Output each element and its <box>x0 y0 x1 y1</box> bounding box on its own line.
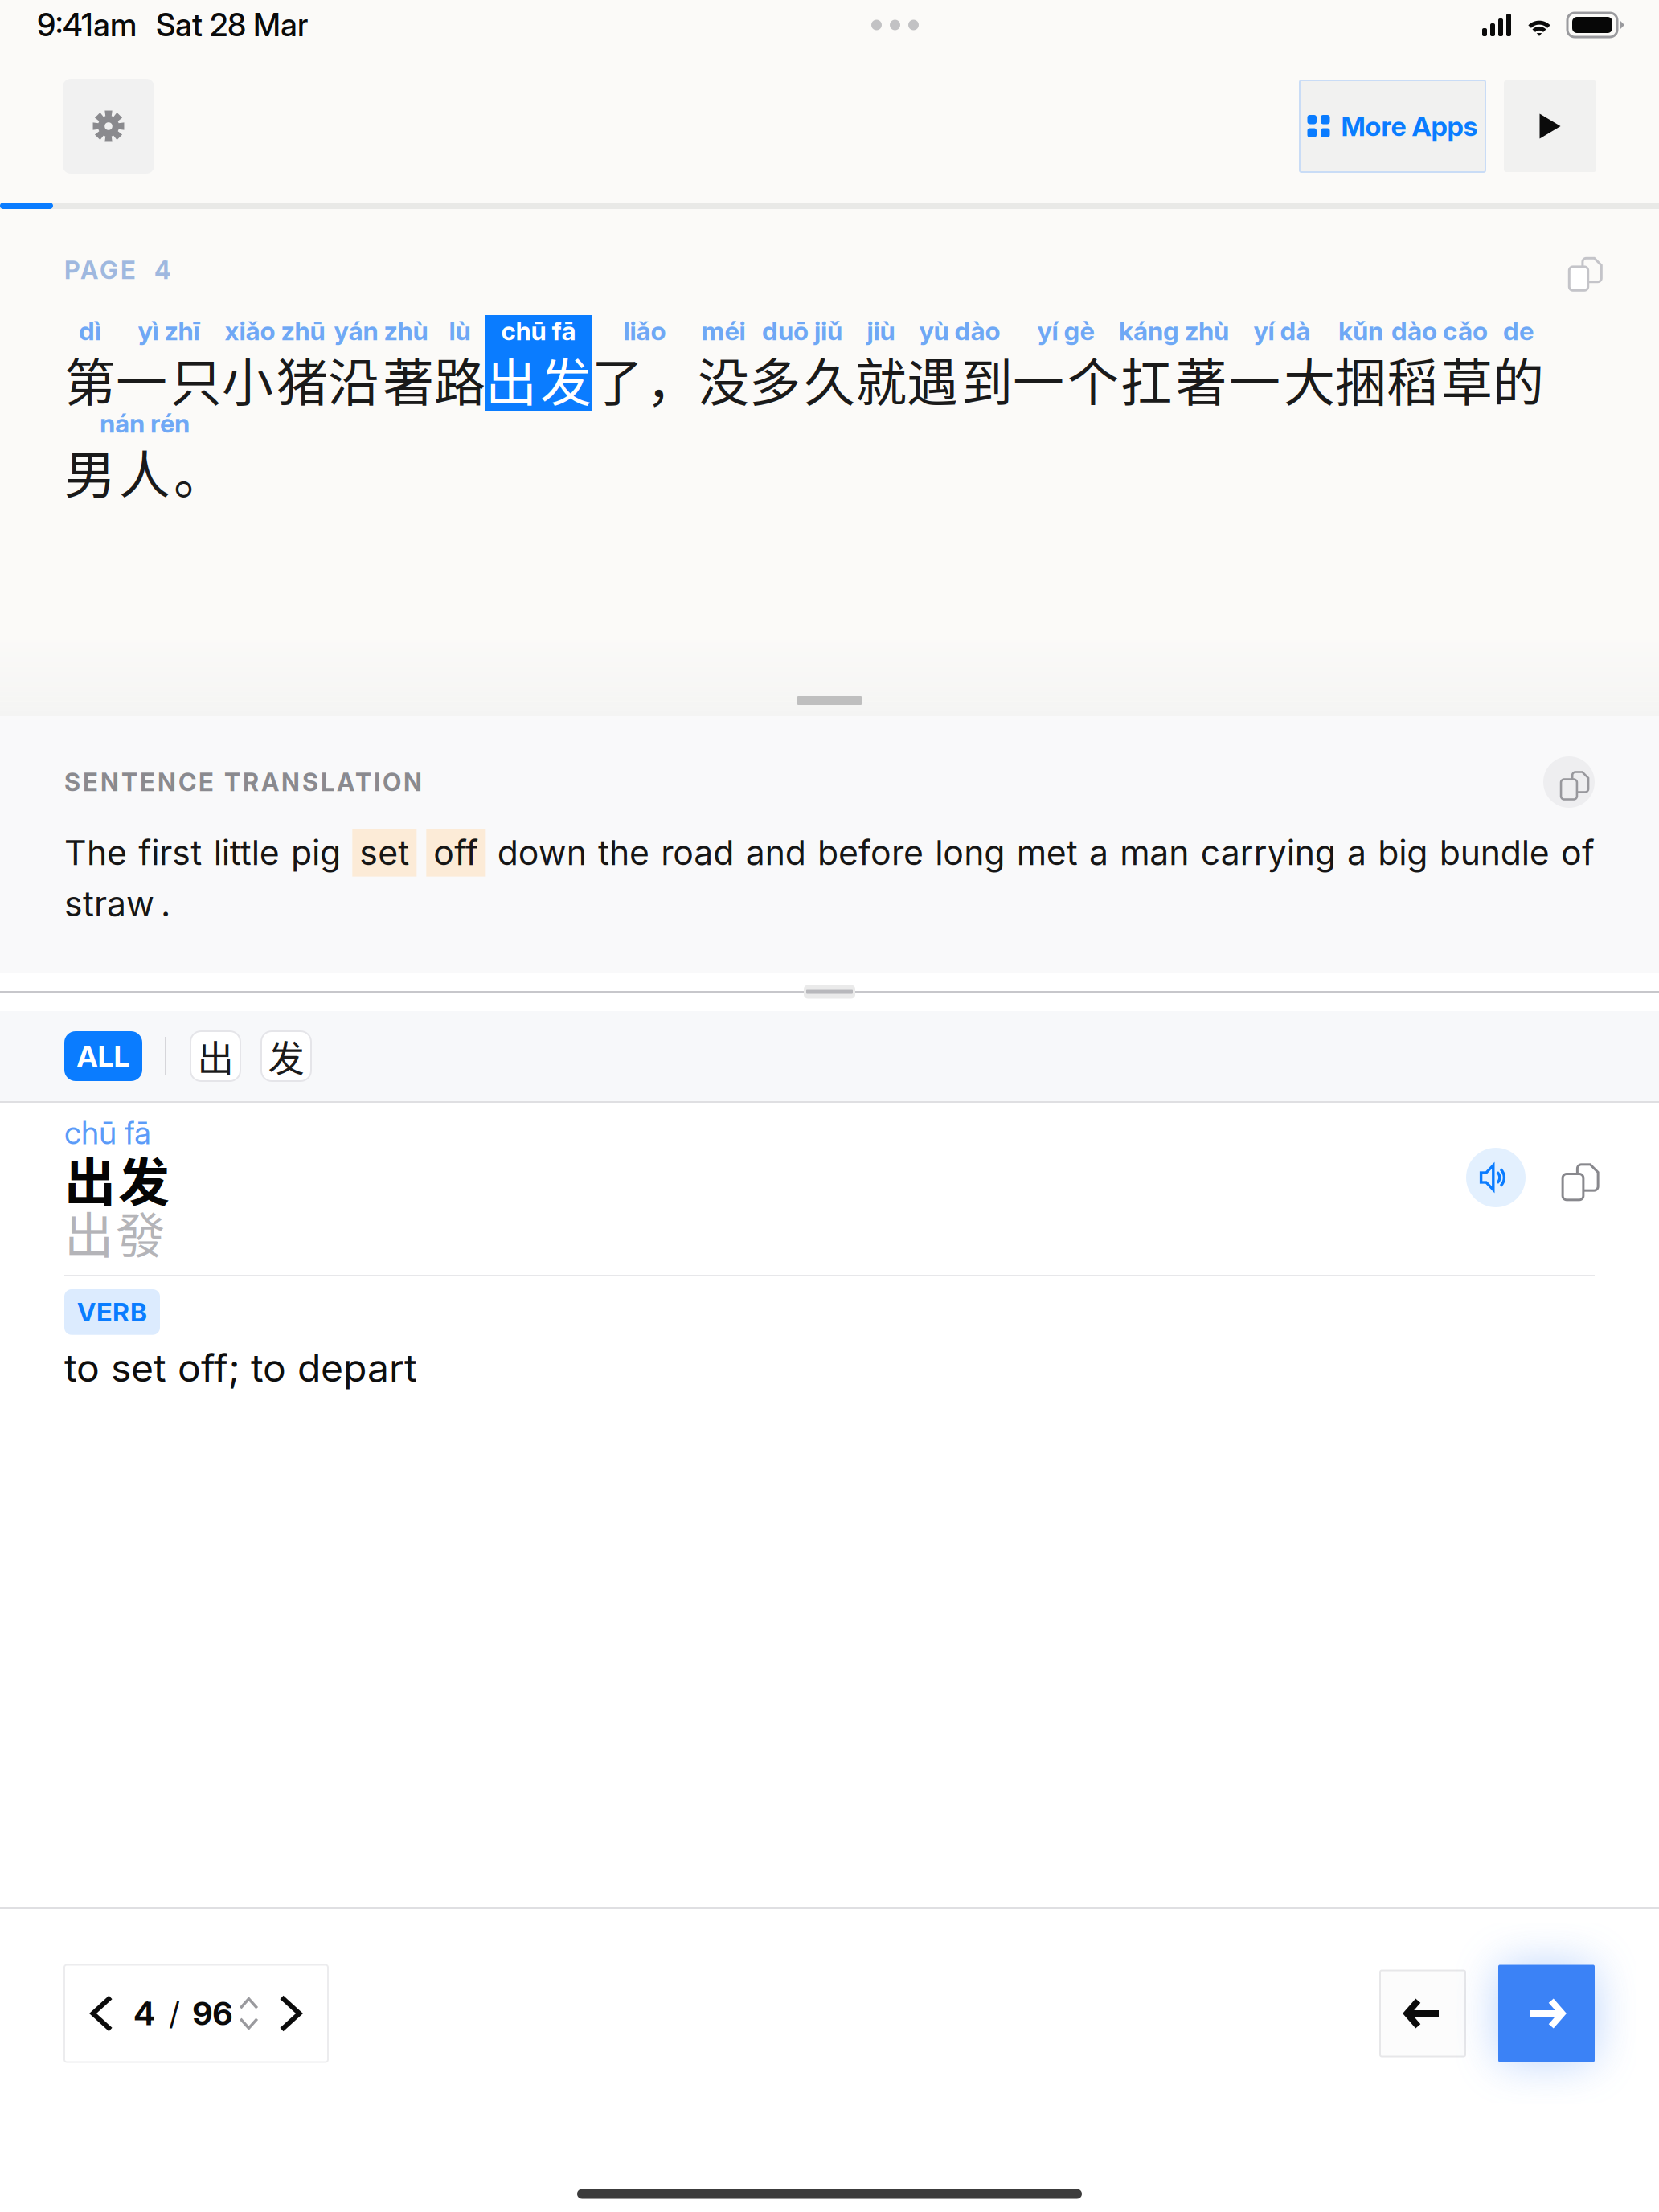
staticText: 了， <box>592 341 698 416</box>
staticText: nán rén <box>100 408 190 439</box>
staticText: yù dào <box>919 315 1000 346</box>
staticText: straw <box>64 883 154 925</box>
staticText: káng zhù <box>1119 315 1229 346</box>
staticText: 沿著 <box>328 341 434 416</box>
staticText: 捆 <box>1335 341 1387 416</box>
button[interactable]: Play <box>1504 80 1596 172</box>
staticText: 96 <box>193 1994 233 2033</box>
staticText: big <box>1378 832 1428 873</box>
staticText: a <box>1089 832 1108 873</box>
staticText: 出發 <box>64 1197 165 1268</box>
button[interactable]: ALL <box>64 1031 142 1081</box>
staticText: 路 <box>434 341 485 416</box>
staticText: xiǎo zhū <box>225 315 325 346</box>
staticText: 发 <box>268 1030 304 1083</box>
staticText: ALL <box>77 1039 130 1074</box>
button[interactable]: Settings <box>63 79 154 174</box>
button[interactable]: Copy sentence <box>1563 254 1595 286</box>
staticText: liǎo <box>623 315 666 346</box>
staticText: 一个 <box>1013 341 1119 416</box>
staticText: 9:41am <box>37 6 137 44</box>
staticText: duō jiǔ <box>762 315 842 346</box>
button[interactable]: Copy word <box>1551 1148 1595 1207</box>
staticText: 多久 <box>749 341 855 416</box>
staticText: 男人。 <box>64 434 225 508</box>
staticText: 扛著 <box>1121 341 1227 416</box>
staticText: . <box>161 883 170 925</box>
staticText: bundle <box>1439 832 1549 873</box>
staticText: dào cǎo <box>1391 315 1488 346</box>
staticText: PAGE 4 <box>64 255 170 285</box>
staticText: road <box>661 832 734 873</box>
staticText: More Apps <box>1341 110 1478 142</box>
button[interactable]: Next page <box>266 1966 315 2061</box>
staticText: / <box>169 1994 180 2033</box>
button[interactable]: Back <box>1380 1970 1465 2056</box>
staticText: chū fā <box>64 1113 151 1152</box>
staticText: 一只 <box>116 341 222 416</box>
staticText: SENTENCE TRANSLATION <box>64 767 422 797</box>
staticText: méi <box>701 315 746 346</box>
staticText: jiù <box>867 315 895 346</box>
staticText: before <box>817 832 924 873</box>
staticText: carrying <box>1201 832 1336 873</box>
staticText: set <box>360 832 409 873</box>
staticText: 遇到 <box>907 341 1013 416</box>
staticText: 出发 <box>64 1141 170 1216</box>
staticText: lù <box>449 315 471 346</box>
button[interactable]: 发 <box>261 1031 311 1081</box>
staticText: kǔn <box>1338 315 1383 346</box>
staticText: 的 <box>1493 341 1544 416</box>
button[interactable]: Forward <box>1498 1965 1595 2062</box>
staticText: yì zhī <box>138 315 200 346</box>
staticText: 稻草 <box>1387 341 1493 416</box>
staticText: 就 <box>855 341 907 416</box>
staticText: pig <box>291 832 341 873</box>
staticText: of <box>1561 832 1595 873</box>
staticText: chū fā <box>501 315 576 346</box>
staticText: yí gè <box>1037 315 1094 346</box>
staticText: down <box>497 832 587 873</box>
staticText: dì <box>79 315 101 346</box>
staticText: VERB <box>77 1296 147 1328</box>
button[interactable]: Play pronunciation <box>1466 1148 1526 1207</box>
staticText: the <box>598 832 649 873</box>
staticText: 没 <box>698 341 749 416</box>
staticText: Sat 28 Mar <box>156 6 308 44</box>
staticText: 4 <box>134 1994 155 2033</box>
staticText: The <box>64 832 127 873</box>
staticText: 一大 <box>1229 341 1335 416</box>
staticText: a <box>1347 832 1366 873</box>
button[interactable]: 出 <box>190 1031 240 1081</box>
staticText: man <box>1120 832 1189 873</box>
staticText: and <box>746 832 806 873</box>
button[interactable]: More Apps <box>1300 80 1485 172</box>
staticText: met <box>1017 832 1078 873</box>
staticText: to set off; to depart <box>64 1344 417 1391</box>
staticText: yán zhù <box>334 315 428 346</box>
button[interactable]: Copy translation <box>1543 756 1595 808</box>
staticText: first <box>138 832 202 873</box>
staticText: de <box>1503 315 1534 346</box>
staticText: 出发 <box>485 341 592 416</box>
staticText: little <box>214 832 279 873</box>
staticText: yí dà <box>1253 315 1311 346</box>
staticText: off <box>433 832 478 873</box>
button[interactable]: Previous page <box>78 1966 126 2061</box>
staticText: 第 <box>64 341 116 416</box>
staticText: 出 <box>197 1030 233 1083</box>
staticText: 小猪 <box>222 341 328 416</box>
staticText: long <box>935 832 1005 873</box>
